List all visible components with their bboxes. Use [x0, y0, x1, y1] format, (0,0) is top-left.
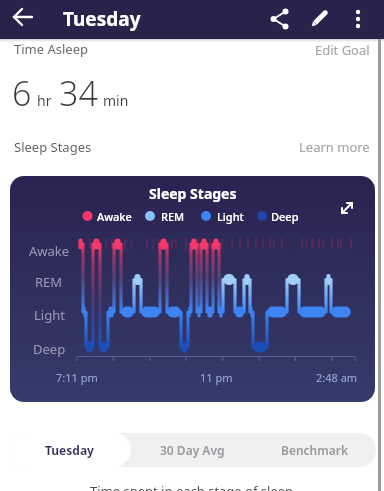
staticText: Edit Goal	[315, 41, 370, 57]
staticText: hr	[37, 91, 52, 110]
staticText: Benchmark	[281, 442, 349, 458]
staticText: Awake	[29, 242, 70, 260]
staticText: Deep	[271, 209, 299, 224]
staticText: Time Asleep	[14, 40, 88, 58]
staticText: REM	[35, 273, 63, 291]
staticText: Tuesday	[45, 442, 94, 458]
staticText: Sleep Stages	[149, 184, 237, 203]
staticText: 30 Day Avg	[160, 442, 225, 458]
staticText: 2:48 am	[316, 370, 358, 385]
staticText: Time spent in each stage of sleep	[90, 482, 294, 491]
staticText: 11 pm	[200, 370, 233, 385]
staticText: 6	[12, 70, 32, 116]
staticText: min	[103, 91, 129, 110]
button[interactable]: Tuesday	[8, 433, 131, 467]
button[interactable]	[6, 2, 40, 36]
button[interactable]: 30 Day Avg	[131, 433, 254, 467]
staticText: Learn more	[299, 138, 370, 154]
staticText: REM	[161, 209, 185, 224]
staticText: Light	[217, 209, 244, 224]
button[interactable]	[332, 193, 362, 223]
staticText: Deep	[33, 340, 66, 358]
staticText: Tuesday	[63, 6, 141, 32]
staticText: Light	[34, 306, 65, 324]
button[interactable]: Learn more	[290, 138, 370, 154]
staticText: 34	[59, 70, 98, 116]
staticText: Awake	[97, 209, 132, 224]
staticText: 7:11 pm	[56, 370, 98, 385]
staticText: Sleep Stages	[14, 138, 92, 156]
button[interactable]: Edit Goal	[306, 41, 370, 57]
button[interactable]: Benchmark	[254, 433, 376, 467]
button[interactable]	[340, 1, 376, 37]
button[interactable]	[262, 1, 298, 37]
button[interactable]	[301, 1, 337, 37]
